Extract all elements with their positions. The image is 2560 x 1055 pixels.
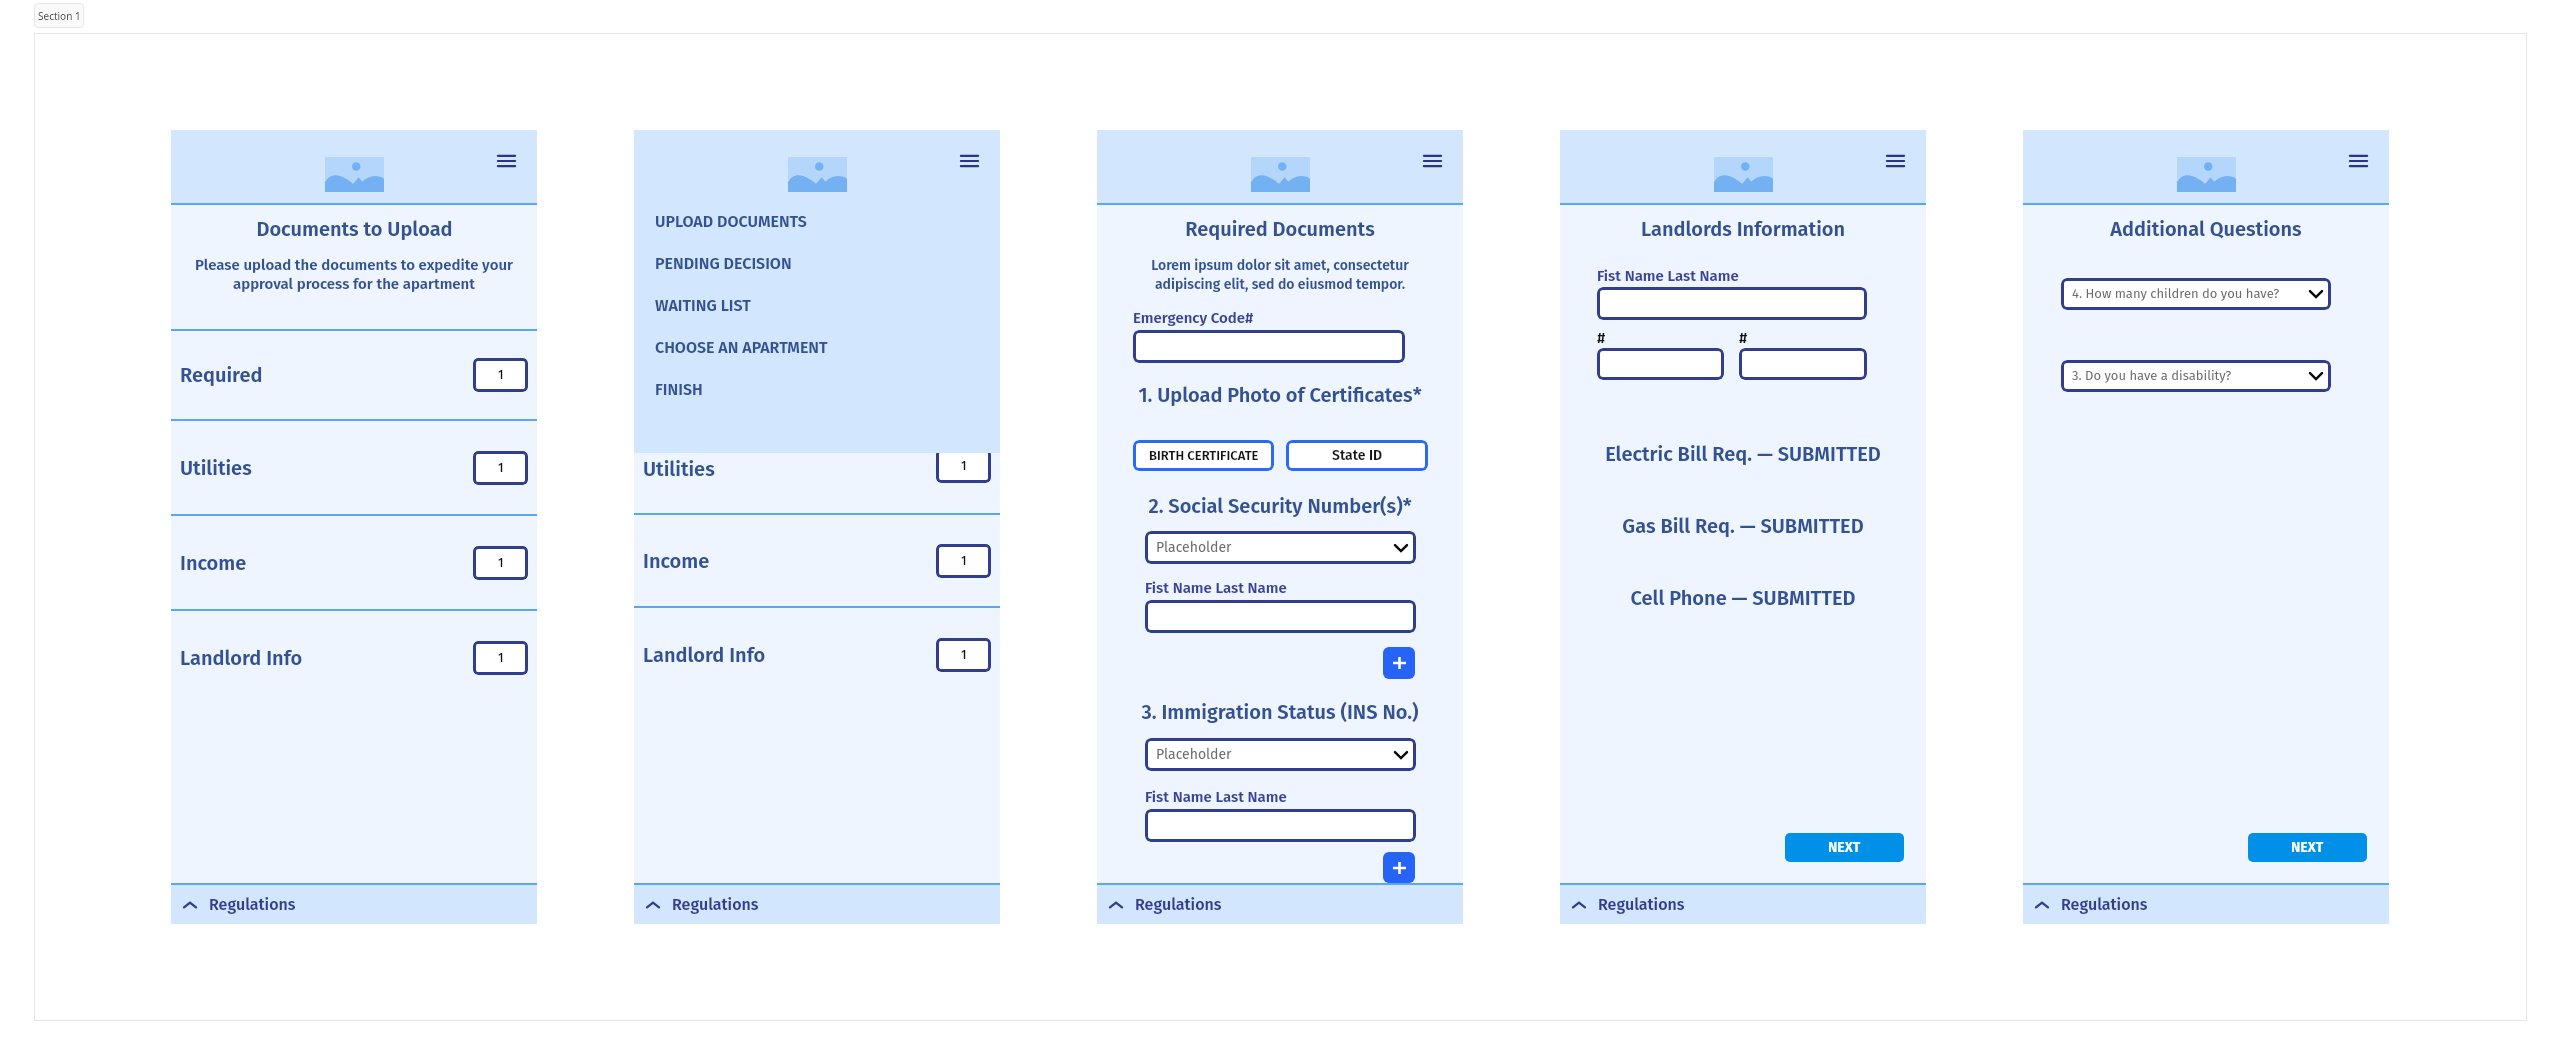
staticText: Regulations	[209, 895, 296, 914]
staticText: 4. How many children do you have?	[2072, 286, 2280, 302]
staticText: 1	[498, 651, 504, 665]
button[interactable]: Menu	[1882, 150, 1909, 172]
staticText: 1. Upload Photo of Certificates*	[1097, 383, 1463, 407]
staticText: Landlord Info	[643, 643, 766, 667]
button[interactable]: Select: 4. How many children do you have…	[2061, 278, 2331, 310]
button[interactable]: Text field	[1739, 348, 1867, 380]
staticText: WAITING LIST	[655, 296, 751, 315]
button[interactable]: Text field	[1597, 287, 1867, 320]
button[interactable]: Add	[1383, 852, 1415, 883]
button[interactable]: Regulations	[634, 885, 1000, 924]
staticText: 1	[961, 459, 967, 473]
staticText: Landlord Info	[180, 646, 303, 670]
staticText: CHOOSE AN APARTMENT	[655, 338, 828, 357]
button[interactable]: Section 1	[34, 3, 84, 28]
button[interactable]: State ID	[1286, 440, 1428, 471]
staticText: Cell Phone — SUBMITTED	[1560, 586, 1926, 610]
staticText: Regulations	[672, 895, 759, 914]
staticText: Electric Bill Req. — SUBMITTED	[1560, 442, 1926, 466]
staticText: Section 1	[38, 9, 81, 23]
staticText: Income	[180, 551, 247, 575]
staticText: Fist Name Last Name	[1145, 788, 1287, 806]
button[interactable]: Regulations	[171, 885, 537, 924]
staticText: Fist Name Last Name	[1597, 267, 1739, 285]
button[interactable]: UPLOAD DOCUMENTS	[655, 200, 807, 242]
staticText: #	[1739, 329, 1748, 347]
staticText: Landlords Information	[1560, 217, 1926, 241]
staticText: Regulations	[2061, 895, 2148, 914]
button[interactable]: PENDING DECISION	[655, 242, 792, 284]
staticText: Placeholder	[1156, 539, 1232, 556]
button[interactable]: 1	[473, 451, 528, 485]
button[interactable]: Utilities	[634, 424, 1000, 513]
button[interactable]: 1	[473, 358, 528, 392]
staticText: NEXT	[2291, 839, 2324, 856]
staticText: Please upload the documents to expedite …	[185, 256, 523, 293]
button[interactable]: Menu	[956, 150, 983, 172]
button[interactable]: 1	[473, 641, 528, 675]
button[interactable]: Select: Placeholder	[1145, 738, 1416, 771]
staticText: NEXT	[1828, 839, 1861, 856]
staticText: PENDING DECISION	[655, 254, 792, 273]
staticText: Required Documents	[1097, 217, 1463, 241]
staticText: Gas Bill Req. — SUBMITTED	[1560, 514, 1926, 538]
staticText: 1	[961, 554, 967, 568]
button[interactable]: Utilities	[171, 421, 537, 514]
button[interactable]: Select: Placeholder	[1145, 531, 1416, 564]
button[interactable]: Regulations	[2023, 885, 2389, 924]
button[interactable]: 1	[936, 449, 991, 483]
button[interactable]: CHOOSE AN APARTMENT	[655, 326, 828, 368]
staticText: 2. Social Security Number(s)*	[1097, 494, 1463, 518]
staticText: Placeholder	[1156, 746, 1232, 763]
staticText: Utilities	[180, 456, 252, 480]
staticText: BIRTH CERTIFICATE	[1149, 448, 1259, 464]
staticText: Regulations	[1135, 895, 1222, 914]
button[interactable]: Landlord Info	[634, 608, 1000, 701]
button[interactable]: Select: 3. Do you have a disability?	[2061, 360, 2331, 392]
button[interactable]: Required	[171, 331, 537, 419]
staticText: State ID	[1332, 447, 1383, 464]
button[interactable]: 1	[473, 546, 528, 580]
staticText: 1	[498, 461, 504, 475]
button[interactable]: Landlord Info	[171, 611, 537, 704]
staticText: Income	[643, 549, 710, 573]
staticText: 3. Immigration Status (INS No.)	[1097, 700, 1463, 724]
button[interactable]: Income	[634, 515, 1000, 606]
button[interactable]: Regulations	[1097, 885, 1463, 924]
button[interactable]: Add	[1383, 647, 1415, 679]
staticText: Regulations	[1598, 895, 1685, 914]
button[interactable]: NEXT	[1785, 833, 1904, 862]
staticText: Required	[180, 363, 263, 387]
staticText: Utilities	[643, 457, 715, 481]
button[interactable]: Text field	[1597, 348, 1724, 380]
button[interactable]: Text field	[1133, 330, 1405, 363]
staticText: Additional Questions	[2023, 217, 2389, 241]
button[interactable]: Menu	[493, 150, 520, 172]
button[interactable]: Regulations	[1560, 885, 1926, 924]
button[interactable]: FINISH	[655, 368, 703, 410]
staticText: FINISH	[655, 380, 703, 399]
button[interactable]: Text field	[1145, 809, 1416, 842]
button[interactable]: WAITING LIST	[655, 284, 751, 326]
button[interactable]: BIRTH CERTIFICATE	[1133, 440, 1274, 471]
button[interactable]: NEXT	[2248, 833, 2367, 862]
button[interactable]: Menu	[2345, 150, 2372, 172]
staticText: 3. Do you have a disability?	[2072, 368, 2232, 384]
staticText: Documents to Upload	[256, 217, 453, 241]
staticText: UPLOAD DOCUMENTS	[655, 212, 807, 231]
button[interactable]: Text field	[1145, 600, 1416, 633]
staticText: 1	[498, 556, 504, 570]
staticText: 1	[498, 368, 504, 382]
staticText: Fist Name Last Name	[1145, 579, 1287, 597]
button[interactable]: Income	[171, 516, 537, 609]
staticText: 1	[961, 648, 967, 662]
staticText: Emergency Code#	[1133, 309, 1254, 327]
staticText: #	[1597, 329, 1606, 347]
staticText: Lorem ipsum dolor sit amet, consectetur …	[1119, 257, 1441, 293]
button[interactable]: 1	[936, 544, 991, 578]
button[interactable]: 1	[936, 638, 991, 672]
button[interactable]: Menu	[1419, 150, 1446, 172]
